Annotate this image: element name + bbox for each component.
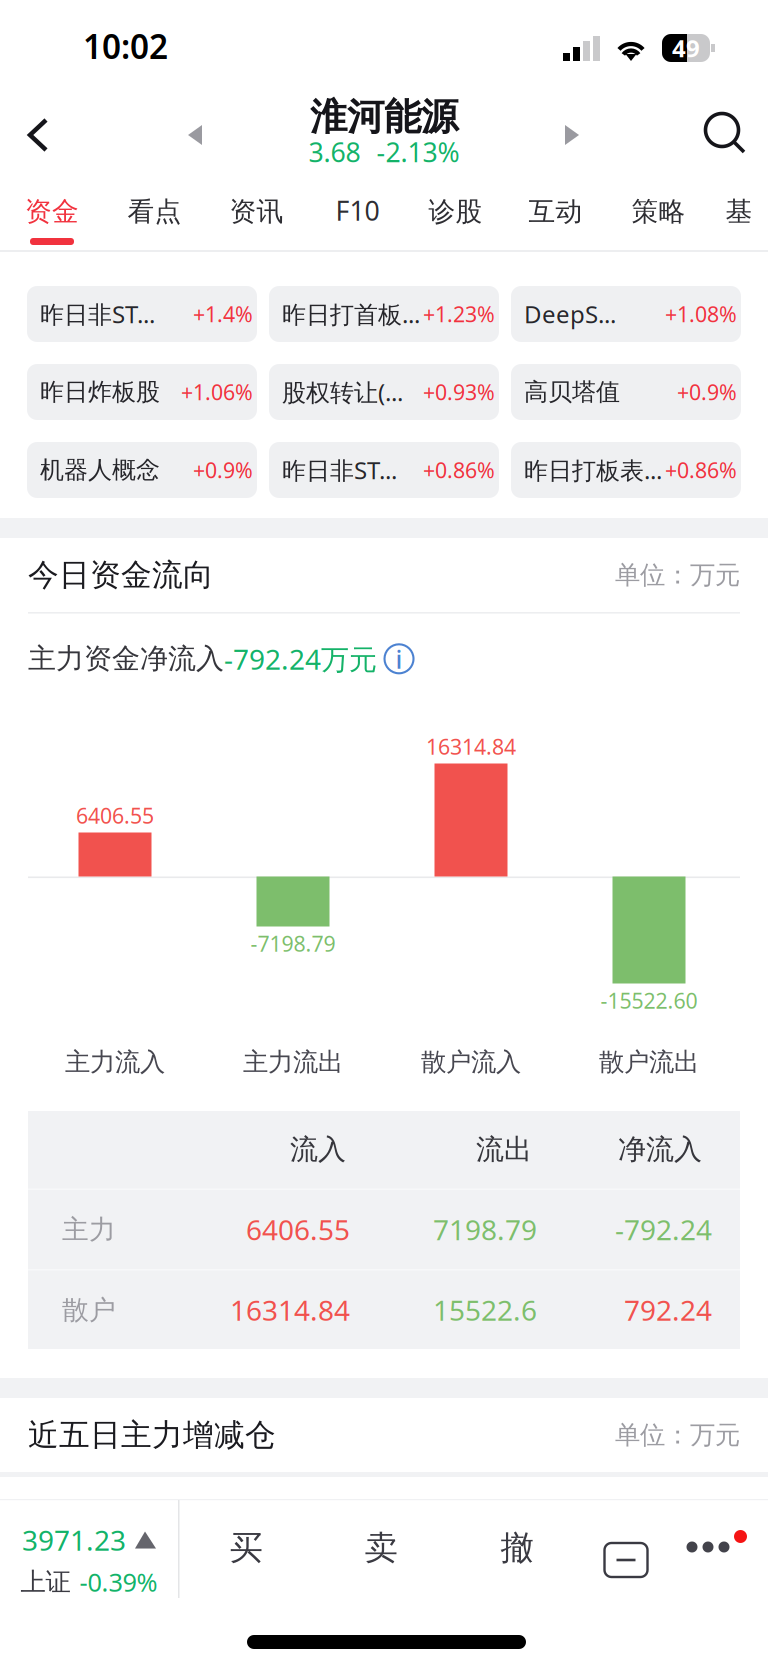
- button[interactable]: 诊股: [407, 178, 504, 250]
- staticText: F10: [335, 193, 379, 228]
- button[interactable]: Search: [688, 92, 764, 178]
- button[interactable]: 资讯: [205, 178, 308, 250]
- staticText: -0.39%: [79, 1565, 157, 1599]
- button[interactable]: 卖: [321, 1498, 441, 1598]
- staticText: +1.08%: [665, 300, 737, 328]
- staticText: 流入: [290, 1132, 346, 1167]
- button[interactable]: 买: [186, 1498, 306, 1598]
- staticText: -15522.60: [600, 986, 697, 1015]
- button[interactable]: 基: [710, 178, 768, 250]
- staticText: 上证: [20, 1566, 70, 1597]
- staticText: 昨日非ST...: [282, 454, 397, 486]
- staticText: +0.93%: [423, 378, 495, 406]
- staticText: 散户流入: [421, 1046, 521, 1077]
- staticText: 单位：万元: [615, 1419, 740, 1450]
- staticText: 基: [725, 195, 752, 228]
- staticText: 16314.84: [426, 732, 516, 761]
- staticText: 主力资金净流入: [28, 642, 224, 676]
- button[interactable]: 昨日炸板股: [27, 364, 257, 420]
- staticText: +0.9%: [193, 456, 253, 484]
- staticText: 7198.79: [433, 1211, 537, 1248]
- button[interactable]: Next stock: [539, 92, 605, 178]
- staticText: 近五日主力增减仓: [28, 1416, 276, 1454]
- button[interactable]: Previous stock: [162, 92, 228, 178]
- staticText: 主力流出: [243, 1046, 343, 1077]
- staticText: 昨日打板表...: [524, 454, 662, 486]
- button[interactable]: 机器人概念: [27, 442, 257, 498]
- button[interactable]: 撤: [457, 1498, 577, 1598]
- staticText: 诊股: [428, 195, 482, 228]
- staticText: -7198.79: [250, 929, 335, 958]
- button[interactable]: 昨日打板表...: [511, 442, 741, 498]
- button[interactable]: 3971.23: [0, 1500, 178, 1620]
- button[interactable]: 昨日非ST...: [27, 286, 257, 342]
- staticText: 高贝塔值: [524, 377, 620, 407]
- staticText: 淮河能源: [310, 94, 458, 140]
- staticText: DeepS...: [524, 298, 616, 330]
- staticText: -2.13%: [376, 134, 459, 170]
- staticText: i: [395, 642, 402, 676]
- staticText: 16314.84: [230, 1291, 350, 1329]
- staticText: 看点: [127, 195, 181, 228]
- button[interactable]: 昨日非ST...: [269, 442, 499, 498]
- button[interactable]: F10: [308, 178, 407, 250]
- staticText: 撤: [500, 1527, 533, 1568]
- staticText: 散户: [62, 1294, 116, 1326]
- staticText: 昨日炸板股: [40, 377, 160, 407]
- button[interactable]: 股权转让(...: [269, 364, 499, 420]
- staticText: 昨日打首板...: [282, 298, 420, 330]
- staticText: 6406.55: [246, 1211, 350, 1248]
- staticText: +1.06%: [181, 378, 253, 406]
- staticText: +1.23%: [423, 300, 495, 328]
- staticText: 49: [672, 32, 700, 64]
- staticText: -792.24: [615, 1211, 712, 1248]
- staticText: 今日资金流向: [28, 556, 214, 594]
- button[interactable]: 资金: [0, 178, 104, 250]
- button[interactable]: Positions: [584, 1510, 668, 1610]
- staticText: 主力流入: [65, 1046, 165, 1077]
- staticText: 6406.55: [76, 801, 154, 830]
- staticText: 散户流出: [599, 1046, 699, 1077]
- button[interactable]: DeepS...: [511, 286, 741, 342]
- staticText: 3.68: [308, 134, 360, 170]
- staticText: +0.86%: [665, 456, 737, 484]
- staticText: 单位：万元: [615, 559, 740, 590]
- staticText: 资讯: [229, 195, 283, 228]
- staticText: 资金: [25, 195, 79, 228]
- staticText: 机器人概念: [40, 455, 160, 485]
- button[interactable]: 看点: [104, 178, 205, 250]
- staticText: +0.86%: [423, 456, 495, 484]
- button[interactable]: 高贝塔值: [511, 364, 741, 420]
- button[interactable]: Back: [0, 92, 76, 178]
- staticText: 15522.6: [433, 1291, 537, 1329]
- staticText: +1.4%: [193, 300, 253, 328]
- staticText: 10:02: [83, 24, 168, 68]
- staticText: 卖: [364, 1527, 397, 1568]
- button[interactable]: 互动: [504, 178, 607, 250]
- staticText: -792.24万元: [224, 640, 377, 677]
- staticText: 股权转让(...: [282, 376, 403, 408]
- staticText: 净流入: [618, 1132, 702, 1167]
- button[interactable]: 昨日打首板...: [269, 286, 499, 342]
- staticText: 流出: [476, 1132, 532, 1167]
- staticText: 策略: [631, 195, 685, 228]
- staticText: 3971.23: [22, 1521, 126, 1559]
- staticText: 792.24: [624, 1291, 712, 1329]
- staticText: 昨日非ST...: [40, 298, 155, 330]
- button[interactable]: More: [671, 1497, 761, 1597]
- staticText: 主力: [62, 1213, 116, 1246]
- staticText: 互动: [528, 195, 582, 228]
- button[interactable]: 策略: [607, 178, 710, 250]
- staticText: +0.9%: [677, 378, 737, 406]
- staticText: 买: [229, 1527, 262, 1568]
